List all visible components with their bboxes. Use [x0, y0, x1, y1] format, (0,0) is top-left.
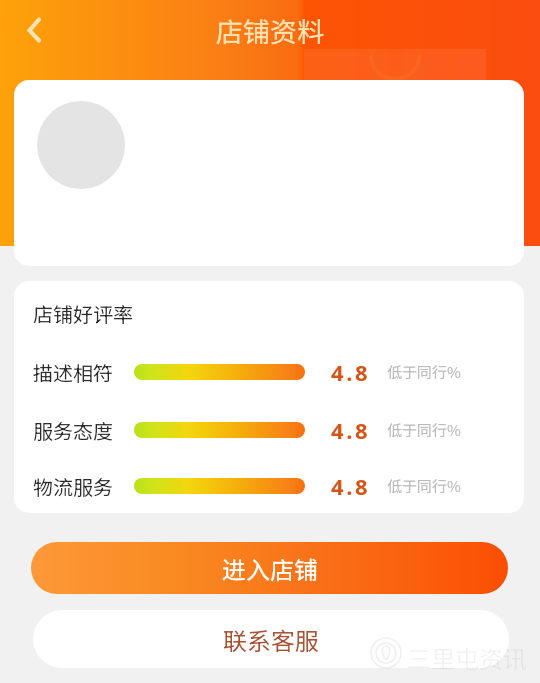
staticText: 店铺好评率	[33, 299, 133, 328]
button[interactable]: Back	[10, 8, 56, 54]
staticText: 物流服务	[33, 472, 113, 501]
button[interactable]: 进入店铺	[31, 542, 508, 594]
staticText: 4.8	[331, 415, 371, 445]
staticText: 店铺资料	[216, 11, 324, 50]
button[interactable]	[14, 80, 524, 266]
staticText: 低于同行%	[387, 361, 461, 383]
staticText: 三里屯资讯	[407, 640, 527, 675]
staticText: 描述相符	[33, 358, 113, 387]
staticText: 服务态度	[33, 416, 113, 445]
button[interactable]: 联系客服	[33, 610, 509, 668]
staticText: 4.8	[331, 357, 371, 387]
staticText: 低于同行%	[387, 475, 461, 497]
staticText: 4.8	[331, 471, 371, 501]
staticText: 联系客服	[223, 622, 319, 657]
staticText: 低于同行%	[387, 419, 461, 441]
staticText: 进入店铺	[222, 551, 318, 586]
